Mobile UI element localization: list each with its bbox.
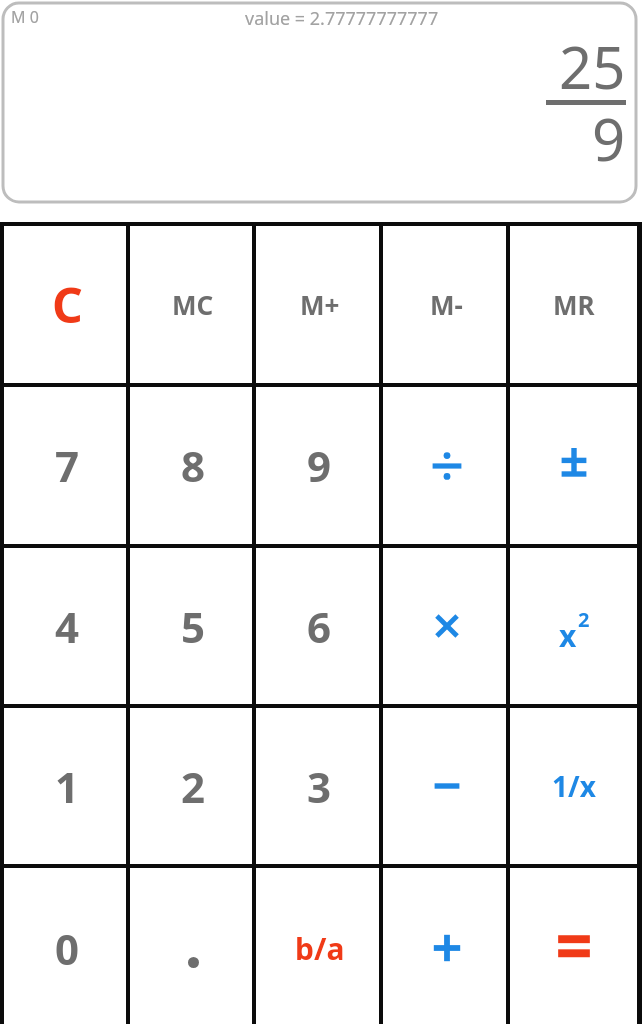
button[interactable]: 5 bbox=[130, 548, 256, 704]
button[interactable]: 1 bbox=[4, 708, 130, 864]
staticText: 1/x bbox=[552, 767, 596, 805]
button[interactable]: 8 bbox=[130, 387, 256, 544]
staticText: x bbox=[559, 615, 577, 656]
button[interactable]: Decimal point bbox=[130, 868, 256, 1024]
button[interactable]: 6 bbox=[256, 548, 383, 704]
button[interactable]: Plus minus bbox=[510, 387, 637, 544]
button[interactable]: 2 bbox=[130, 708, 256, 864]
button[interactable]: Multiply bbox=[383, 548, 510, 704]
button[interactable]: Memory recall bbox=[510, 226, 637, 383]
staticText: 1 bbox=[55, 758, 80, 815]
button[interactable]: Memory subtract bbox=[383, 226, 510, 383]
button[interactable]: Add bbox=[383, 868, 510, 1024]
button[interactable]: Memory add bbox=[256, 226, 383, 383]
button[interactable]: 4 bbox=[4, 548, 130, 704]
button[interactable]: 0 bbox=[4, 868, 130, 1024]
staticText: 2 bbox=[181, 758, 206, 815]
staticText: M- bbox=[430, 287, 463, 322]
button[interactable]: Fraction b over a bbox=[256, 868, 383, 1024]
staticText: 9 bbox=[307, 437, 332, 494]
staticText: 5 bbox=[181, 598, 206, 655]
staticText: 8 bbox=[181, 437, 206, 494]
staticText: 7 bbox=[55, 437, 80, 494]
button[interactable]: Subtract bbox=[383, 708, 510, 864]
staticText: 4 bbox=[55, 598, 80, 655]
button[interactable]: Divide bbox=[383, 387, 510, 544]
staticText: b/a bbox=[295, 928, 345, 969]
button[interactable]: Square bbox=[510, 548, 637, 704]
staticText: 0 bbox=[55, 920, 80, 977]
button[interactable]: 9 bbox=[256, 387, 383, 544]
staticText: value = 2.77777777777 bbox=[245, 6, 439, 31]
staticText: 9 bbox=[592, 99, 626, 178]
staticText: MR bbox=[553, 287, 595, 322]
button[interactable]: Memory clear bbox=[130, 226, 256, 383]
button[interactable]: Clear bbox=[4, 226, 130, 383]
staticText: 3 bbox=[307, 758, 332, 815]
staticText: MC bbox=[172, 287, 214, 322]
button[interactable]: Equals bbox=[510, 868, 637, 1024]
staticText: M 0 bbox=[11, 6, 39, 28]
staticText: C bbox=[52, 272, 83, 337]
button[interactable]: Reciprocal bbox=[510, 708, 637, 864]
button[interactable]: 7 bbox=[4, 387, 130, 544]
button[interactable]: 3 bbox=[256, 708, 383, 864]
staticText: 25 bbox=[559, 27, 626, 106]
staticText: 2 bbox=[578, 606, 590, 633]
staticText: M+ bbox=[300, 287, 340, 322]
staticText: 6 bbox=[307, 598, 332, 655]
